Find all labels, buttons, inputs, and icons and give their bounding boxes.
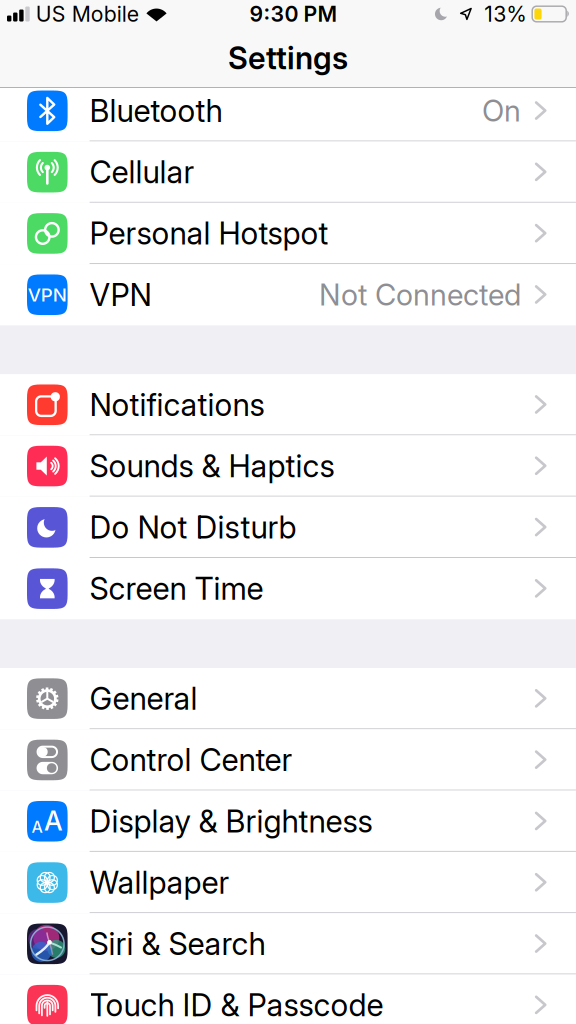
- staticText: US Mobile: [36, 1, 139, 27]
- staticText: A: [44, 805, 63, 836]
- staticText: A: [32, 818, 43, 836]
- button[interactable]: Screen Time: [0, 558, 576, 619]
- staticText: Cellular: [90, 154, 195, 190]
- staticText: Wallpaper: [90, 864, 230, 901]
- staticText: Notifications: [90, 387, 265, 423]
- button[interactable]: Touch ID & Passcode: [0, 974, 576, 1024]
- button[interactable]: Wallpaper: [0, 852, 576, 913]
- button[interactable]: General: [0, 668, 576, 729]
- staticText: VPN: [28, 284, 67, 306]
- staticText: Sounds & Haptics: [90, 448, 335, 484]
- staticText: 13%: [484, 1, 527, 27]
- button[interactable]: Cellular: [0, 141, 576, 203]
- staticText: Siri & Search: [90, 926, 266, 962]
- button[interactable]: Sounds & Haptics: [0, 435, 576, 497]
- staticText: On: [482, 93, 521, 128]
- button[interactable]: VPN: [0, 264, 576, 325]
- staticText: Touch ID & Passcode: [90, 987, 384, 1023]
- button[interactable]: Siri & Search: [0, 913, 576, 974]
- staticText: General: [90, 681, 198, 717]
- button[interactable]: Do Not Disturb: [0, 497, 576, 558]
- staticText: 9:30 PM: [249, 1, 337, 27]
- staticText: Bluetooth: [90, 93, 223, 129]
- staticText: Do Not Disturb: [90, 509, 297, 545]
- button[interactable]: Personal Hotspot: [0, 203, 576, 264]
- staticText: Display & Brightness: [90, 803, 373, 839]
- button[interactable]: Notifications: [0, 374, 576, 435]
- staticText: Settings: [228, 40, 348, 76]
- staticText: VPN: [90, 277, 152, 313]
- staticText: Screen Time: [90, 571, 264, 607]
- staticText: Personal Hotspot: [90, 215, 329, 252]
- staticText: Control Center: [90, 742, 293, 778]
- button[interactable]: Control Center: [0, 729, 576, 791]
- button[interactable]: A: [0, 791, 576, 852]
- staticText: Not Connected: [319, 277, 521, 312]
- button[interactable]: Bluetooth: [0, 80, 576, 141]
